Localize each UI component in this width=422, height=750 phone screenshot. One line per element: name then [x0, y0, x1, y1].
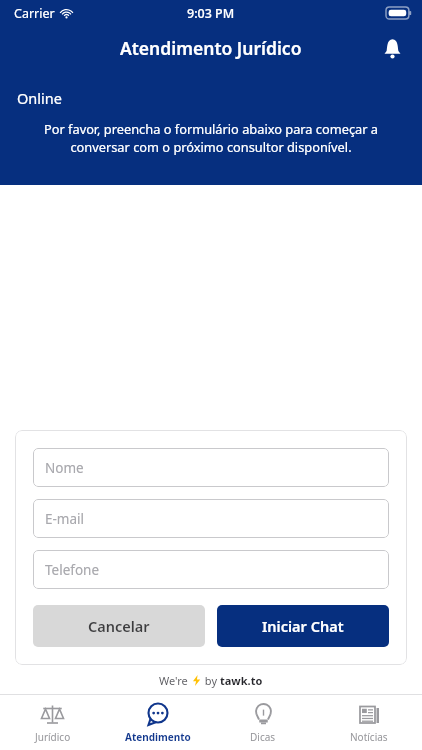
button[interactable]: Notifications — [370, 26, 414, 70]
staticText: 9:03 PM — [187, 5, 235, 22]
staticText: Notícias — [350, 730, 388, 744]
staticText: Cancelar — [88, 616, 150, 636]
staticText: Por favor, preencha o formulário abaixo … — [22, 120, 400, 156]
staticText: Online — [17, 88, 62, 108]
button[interactable]: E-mail — [33, 499, 389, 538]
staticText: Atendimento Jurídico — [120, 36, 302, 60]
staticText: Telefone — [45, 561, 100, 579]
button[interactable]: Atendimento — [105, 695, 210, 750]
staticText: Dicas — [250, 730, 276, 744]
button[interactable]: Iniciar Chat — [217, 605, 389, 647]
staticText: Atendimento — [125, 730, 191, 744]
staticText: tawk.to — [220, 673, 263, 688]
staticText: Nome — [45, 459, 84, 477]
staticText: E-mail — [45, 510, 85, 528]
button[interactable]: Notícias — [316, 695, 422, 750]
staticText: by — [202, 673, 220, 688]
staticText: Jurídico — [35, 730, 71, 744]
staticText: Carrier — [14, 5, 55, 22]
button[interactable]: Nome — [33, 448, 389, 487]
button[interactable]: Cancelar — [33, 605, 205, 647]
staticText: Iniciar Chat — [262, 616, 344, 636]
button[interactable]: Telefone — [33, 550, 389, 589]
staticText: We're — [159, 673, 191, 688]
button[interactable]: Dicas — [210, 695, 316, 750]
button[interactable]: Jurídico — [0, 695, 105, 750]
